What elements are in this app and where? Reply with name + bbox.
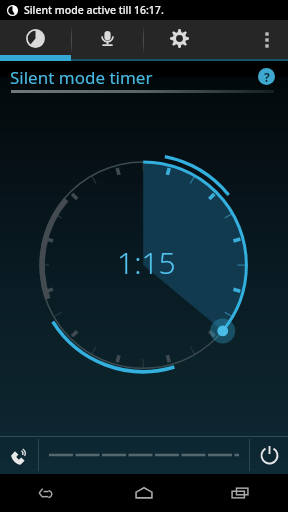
button[interactable]: Voice	[72, 20, 143, 59]
button[interactable]: Timer	[0, 20, 71, 59]
button[interactable]: Ringer mode	[0, 436, 38, 474]
button[interactable]: Recent apps	[192, 474, 288, 512]
staticText: Silent mode active till 16:17.	[24, 3, 164, 17]
staticText: Silent mode timer	[10, 66, 153, 89]
staticText: ?	[264, 69, 270, 85]
button[interactable]: Back	[0, 474, 96, 512]
button[interactable]: More options	[246, 20, 288, 59]
button[interactable]: Settings	[144, 20, 215, 59]
button[interactable]: Help	[258, 68, 275, 85]
button[interactable]: Power off	[250, 436, 288, 474]
button[interactable]: Home	[96, 474, 192, 512]
staticText: 1:15	[117, 242, 176, 283]
